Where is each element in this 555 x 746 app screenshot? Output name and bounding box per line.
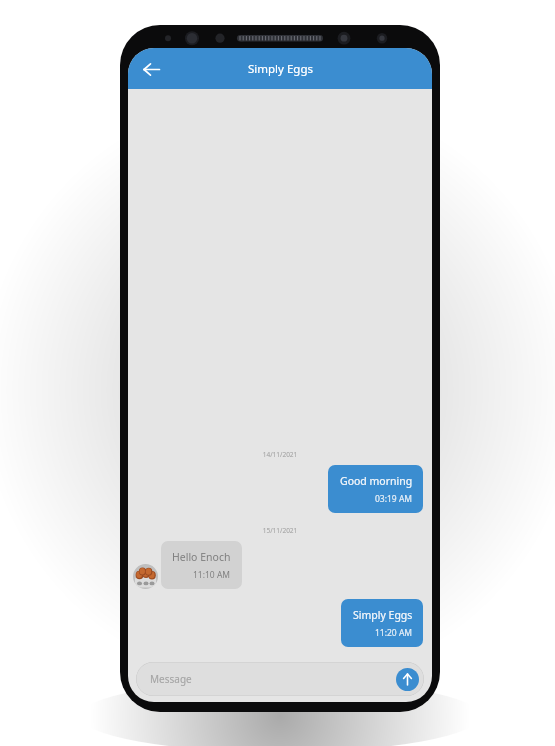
button[interactable]: Simply Eggs <box>341 599 423 647</box>
staticText: 14/11/2021 <box>128 450 432 459</box>
staticText: Hello Enoch <box>172 550 231 564</box>
button[interactable]: Back <box>134 52 168 86</box>
staticText: 11:20 AM <box>375 627 413 639</box>
staticText: 03:19 AM <box>375 493 413 505</box>
button[interactable]: Good morning <box>328 465 423 513</box>
staticText: Simply Eggs <box>353 608 413 622</box>
staticText: Simply Eggs <box>248 61 313 77</box>
button[interactable]: Message <box>136 662 424 696</box>
button[interactable]: Send <box>396 668 419 691</box>
button[interactable]: Contact avatar <box>133 564 158 589</box>
staticText: Message <box>150 672 192 686</box>
button[interactable]: Hello Enoch <box>161 541 242 589</box>
staticText: Good morning <box>340 474 413 488</box>
staticText: 11:10 AM <box>193 569 231 581</box>
staticText: 15/11/2021 <box>128 526 432 535</box>
